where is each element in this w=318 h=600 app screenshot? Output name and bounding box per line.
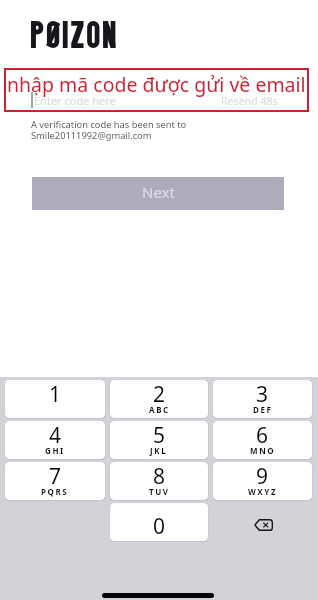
button[interactable]: 0 xyxy=(110,503,208,541)
staticText: Enter code here xyxy=(34,93,116,108)
staticText: Smile20111992@gmail.com xyxy=(31,129,152,142)
staticText: Next xyxy=(142,182,175,202)
button[interactable]: Next xyxy=(32,177,284,210)
button[interactable]: 8 xyxy=(110,462,208,500)
staticText: JKL xyxy=(150,445,168,456)
button[interactable]: 6 xyxy=(213,421,312,459)
staticText: 1 xyxy=(49,380,62,409)
staticText: 7 xyxy=(49,462,62,491)
staticText: 3 xyxy=(256,380,269,409)
button[interactable]: 5 xyxy=(110,421,208,459)
button[interactable]: 3 xyxy=(213,380,312,418)
staticText: GHI xyxy=(45,445,65,456)
staticText: 9 xyxy=(256,462,269,491)
staticText: MNO xyxy=(250,445,276,456)
button[interactable]: 9 xyxy=(213,462,312,500)
staticText: A verification code has been sent to xyxy=(31,118,187,131)
button[interactable]: 2 xyxy=(110,380,208,418)
staticText: PQRS xyxy=(41,486,69,497)
button[interactable]: 1 xyxy=(5,380,105,418)
staticText: nhập mã code được gửi về email xyxy=(7,71,306,97)
staticText: ABC xyxy=(149,404,170,415)
staticText: WXYZ xyxy=(248,486,278,497)
button[interactable]: 4 xyxy=(5,421,105,459)
staticText: 6 xyxy=(256,421,269,450)
staticText: Resend 48s xyxy=(221,94,278,108)
staticText: 8 xyxy=(153,462,166,491)
staticText: DEF xyxy=(253,404,273,415)
staticText: TUV xyxy=(149,486,170,497)
staticText: 2 xyxy=(153,380,166,409)
staticText: 0 xyxy=(153,512,166,541)
staticText: 5 xyxy=(153,421,166,450)
button[interactable]: 7 xyxy=(5,462,105,500)
button[interactable]: Delete xyxy=(213,503,312,541)
staticText: 4 xyxy=(49,421,62,450)
